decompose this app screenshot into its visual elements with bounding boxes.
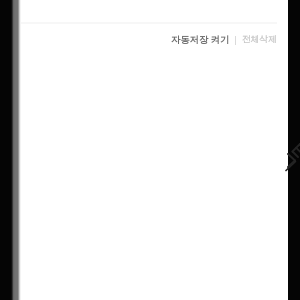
staticText: 전체삭제 bbox=[242, 34, 278, 45]
staticText: | bbox=[233, 33, 239, 46]
button[interactable]: 전체삭제 bbox=[242, 32, 278, 47]
button[interactable]: 자동저장 켜기 bbox=[171, 31, 230, 48]
staticText: 자동저장 켜기 bbox=[171, 33, 230, 46]
